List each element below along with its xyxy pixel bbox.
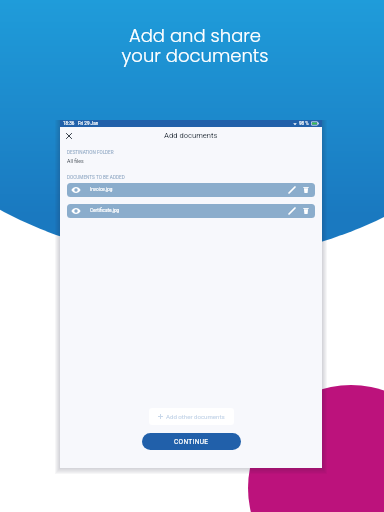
button[interactable]: Certificate.jpg xyxy=(67,204,315,218)
button[interactable]: Add other documents xyxy=(149,408,234,425)
staticText: Add and share your documents xyxy=(3,23,384,68)
button[interactable]: Close xyxy=(63,130,74,141)
staticText: Certificate.jpg xyxy=(90,208,120,214)
staticText: Invoice.jpg xyxy=(90,187,113,193)
staticText: DESTINATION FOLDER xyxy=(67,150,114,155)
button[interactable]: CONTINUE xyxy=(142,433,241,450)
button[interactable]: Invoice.jpg xyxy=(67,183,315,197)
staticText: All files xyxy=(67,158,84,164)
button[interactable]: Edit xyxy=(287,185,297,195)
button[interactable]: Delete xyxy=(301,185,311,195)
staticText: Fri 29 Jan xyxy=(78,121,99,126)
staticText: Add other documents xyxy=(166,413,225,420)
staticText: DOCUMENTS TO BE ADDED xyxy=(67,175,125,180)
staticText: 18:36 xyxy=(63,121,75,126)
staticText: CONTINUE xyxy=(174,438,209,446)
button[interactable]: Delete xyxy=(301,206,311,216)
staticText: Add documents xyxy=(164,131,218,140)
button[interactable]: Edit xyxy=(287,206,297,216)
staticText: 98 % xyxy=(299,121,309,126)
